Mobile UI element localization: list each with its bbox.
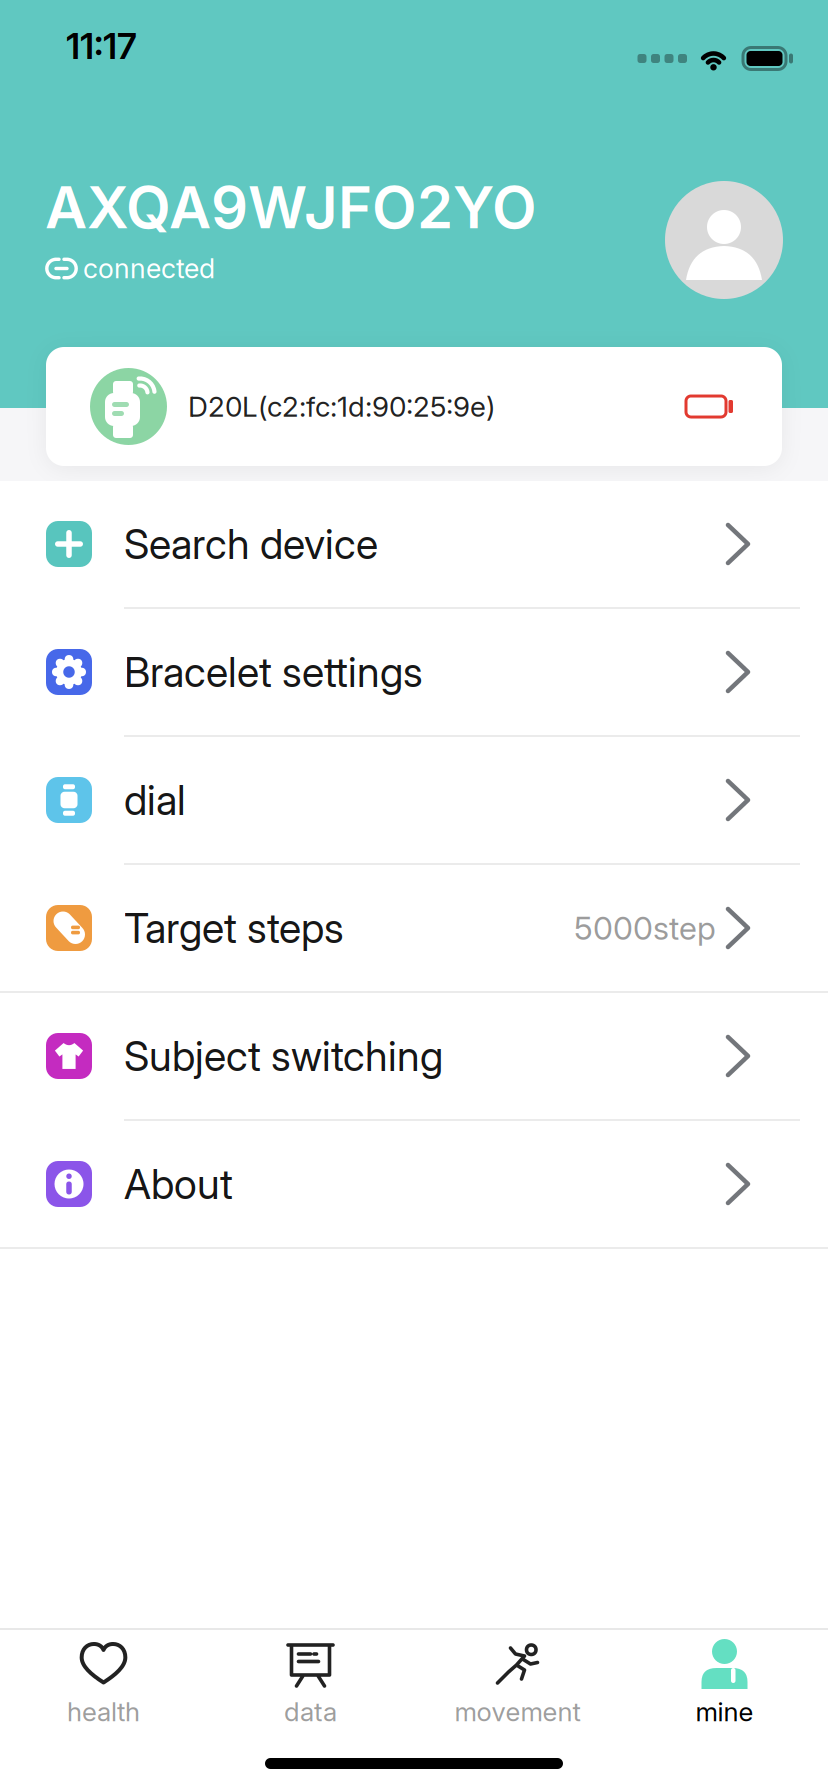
staticText: 5000step — [574, 909, 716, 947]
staticText: Search device — [124, 519, 378, 569]
button[interactable]: Search device — [0, 481, 828, 607]
button[interactable]: Target steps — [0, 865, 828, 991]
staticText: AXQA9WJFO2YO — [45, 172, 537, 242]
staticText: Target steps — [124, 903, 344, 953]
staticText: connected — [83, 252, 215, 285]
staticText: Bracelet settings — [124, 647, 423, 697]
staticText: health — [67, 1696, 140, 1727]
button[interactable]: movement — [414, 1640, 621, 1727]
button[interactable]: health — [0, 1640, 207, 1727]
staticText: dial — [124, 775, 186, 825]
button[interactable]: Subject switching — [0, 993, 828, 1119]
staticText: Subject switching — [124, 1031, 443, 1081]
button[interactable]: Profile — [665, 181, 783, 299]
button[interactable]: Bracelet settings — [0, 609, 828, 735]
button[interactable]: mine — [621, 1640, 828, 1727]
button[interactable]: About — [0, 1121, 828, 1247]
staticText: About — [124, 1159, 233, 1209]
staticText: data — [284, 1696, 337, 1727]
button[interactable]: D20L(c2:fc:1d:90:25:9e) — [46, 347, 782, 466]
staticText: mine — [695, 1696, 753, 1727]
button[interactable]: data — [207, 1640, 414, 1727]
button[interactable]: dial — [0, 737, 828, 863]
staticText: D20L(c2:fc:1d:90:25:9e) — [188, 390, 495, 423]
staticText: 11:17 — [66, 24, 137, 68]
staticText: movement — [454, 1696, 580, 1727]
